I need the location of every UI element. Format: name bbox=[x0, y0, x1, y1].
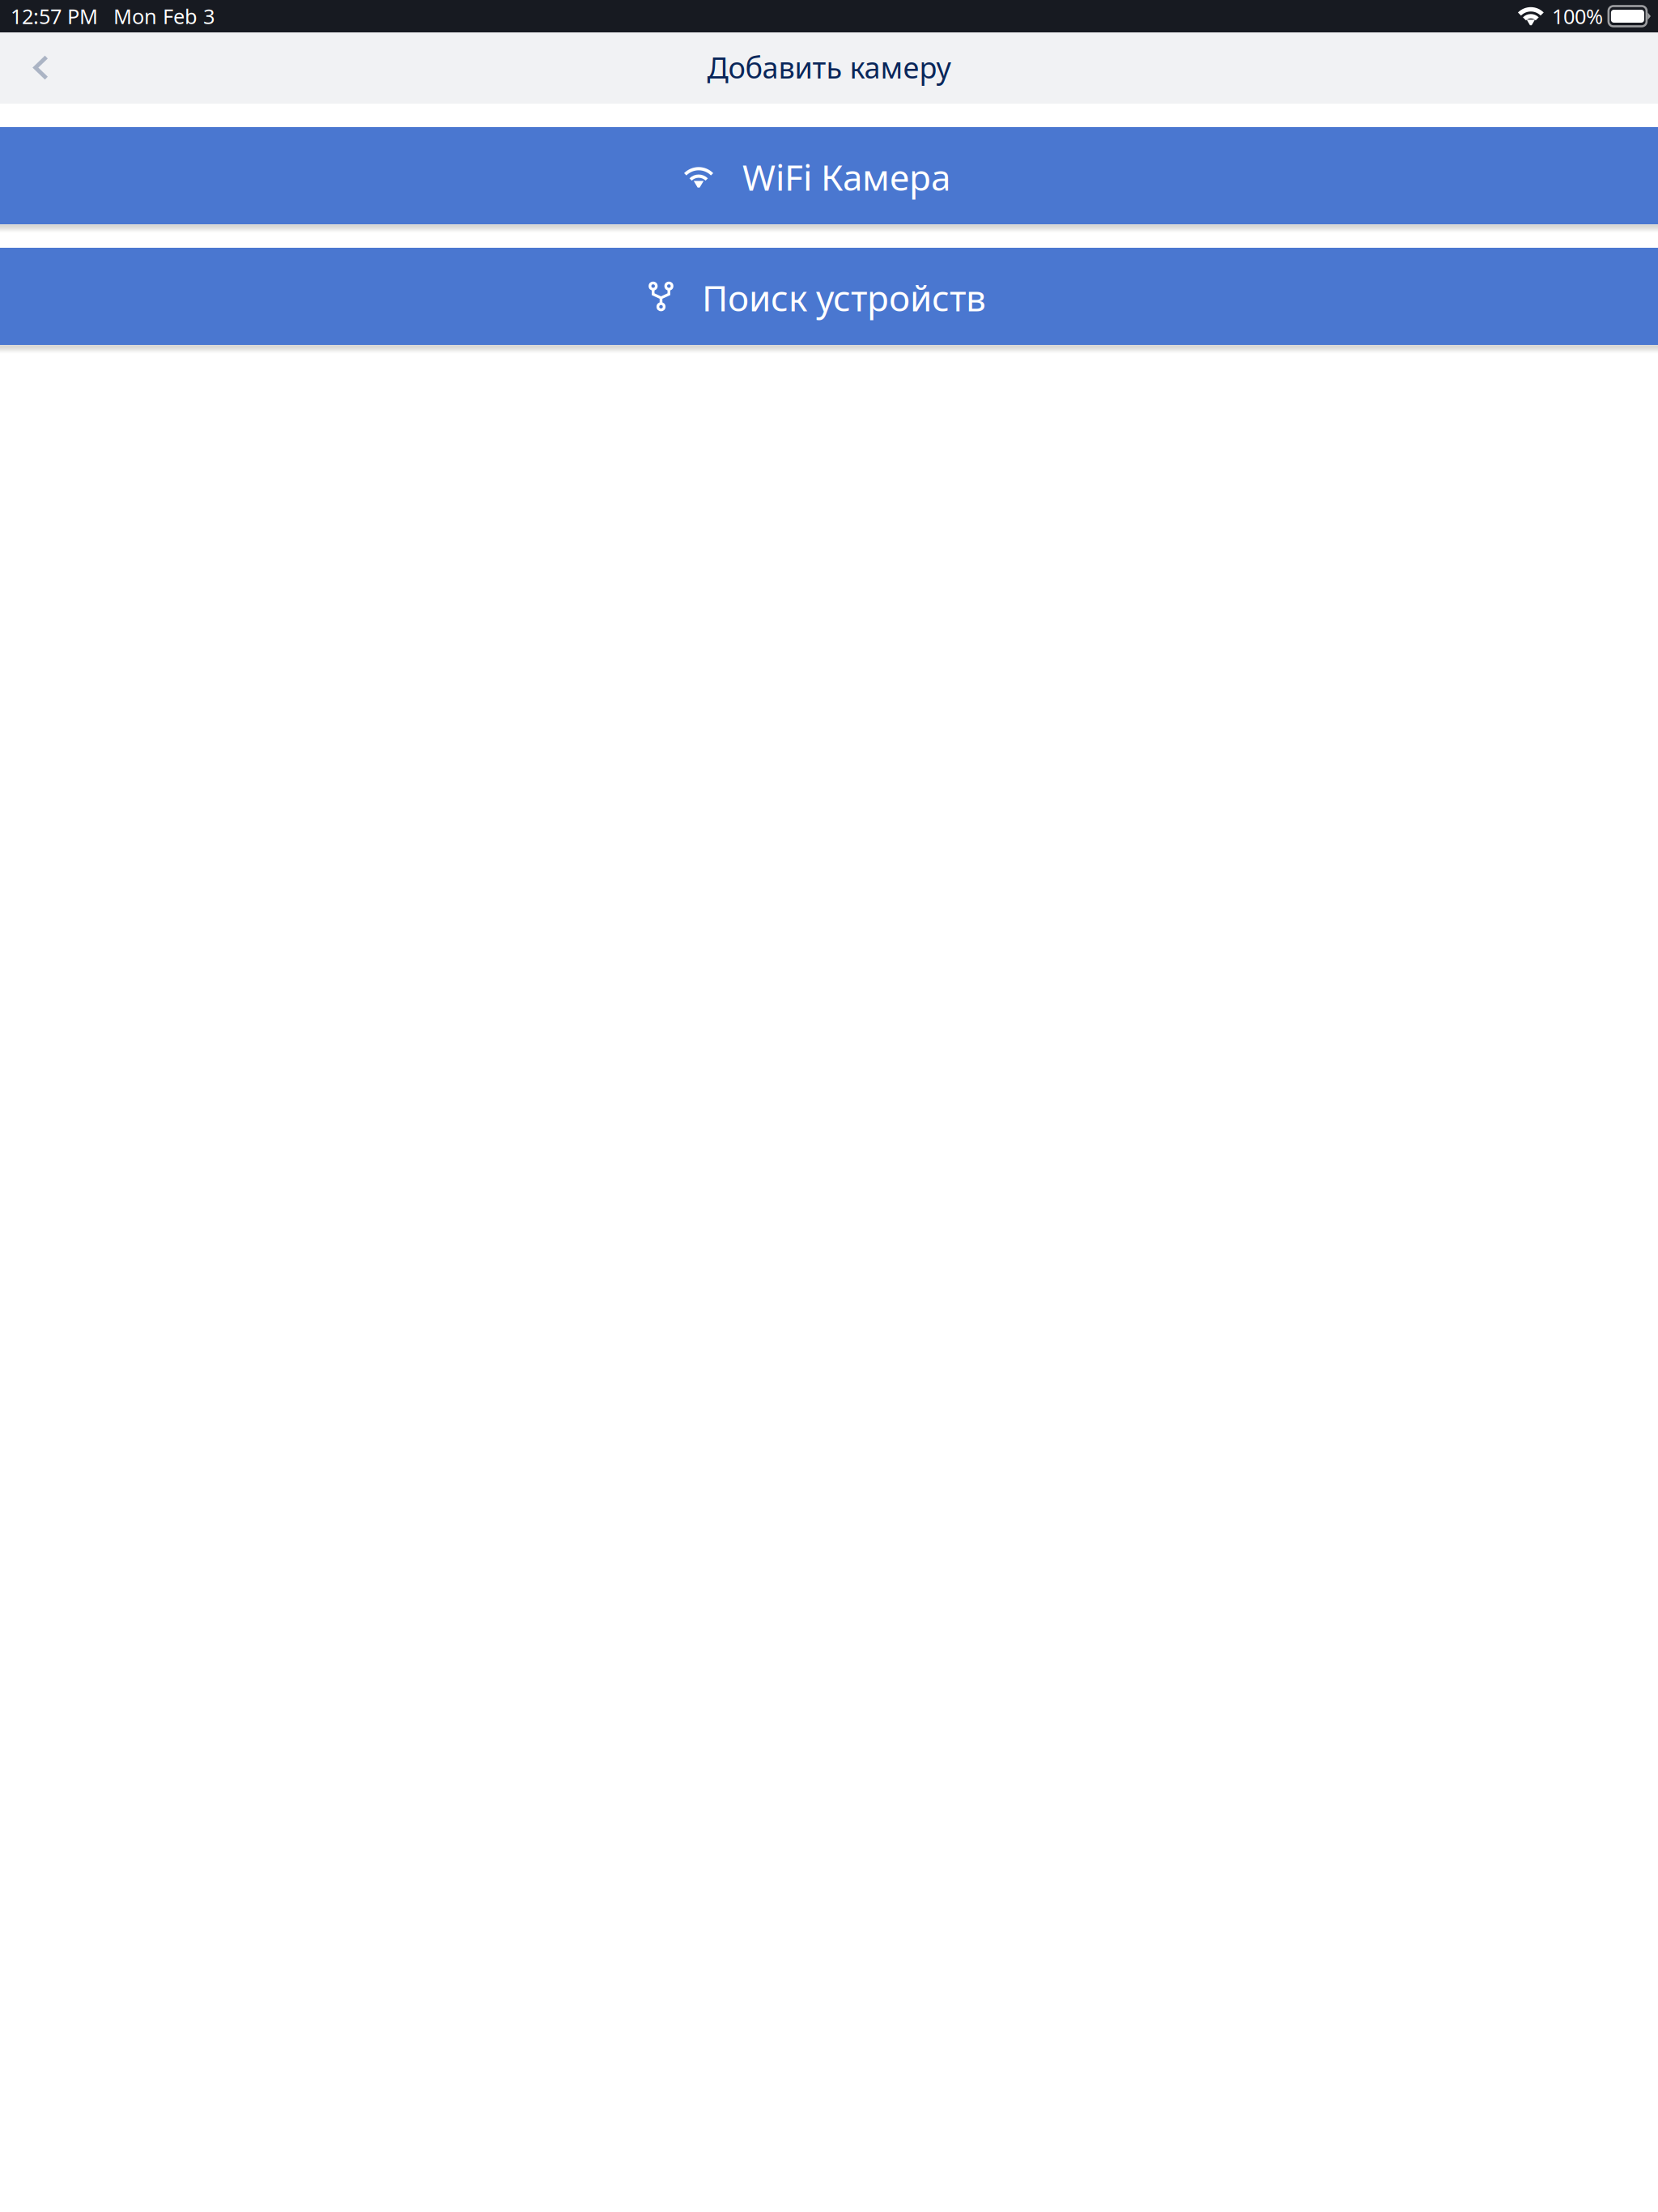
staticText: WiFi Камера bbox=[742, 153, 950, 201]
staticText: Добавить камеру bbox=[707, 48, 951, 87]
staticText: 12:57 PM bbox=[11, 3, 98, 30]
staticText: Поиск устройств bbox=[702, 274, 986, 321]
button[interactable]: Back bbox=[0, 32, 83, 104]
staticText: Mon Feb 3 bbox=[113, 3, 215, 30]
button[interactable]: WiFi Камера bbox=[0, 127, 1658, 233]
button[interactable]: Поиск устройств bbox=[0, 248, 1658, 354]
staticText: 100% bbox=[1552, 3, 1603, 30]
